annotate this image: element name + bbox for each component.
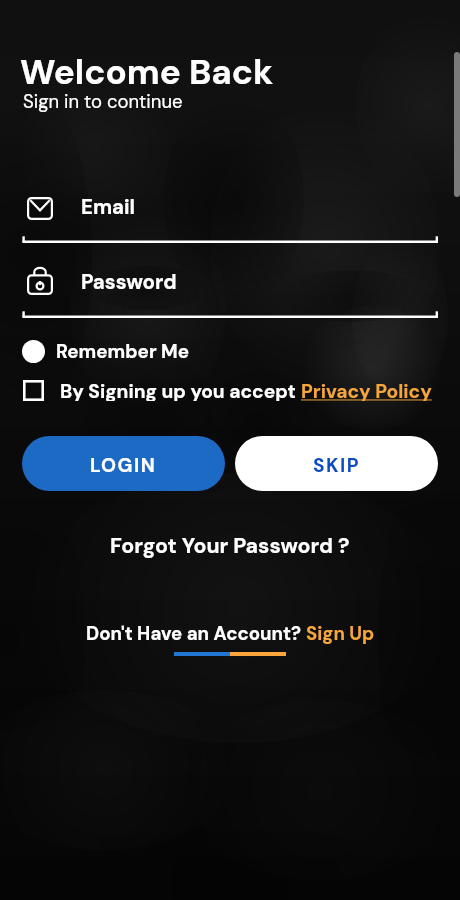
other: Email: [27, 197, 53, 220]
staticText: Password: [81, 269, 177, 296]
button[interactable]: Email: [0, 185, 460, 245]
button[interactable]: Forgot Your Password ?: [110, 532, 350, 560]
staticText: Remember Me: [56, 339, 190, 363]
staticText: By Signing up you accept: [60, 379, 301, 401]
staticText: Welcome Back: [20, 49, 274, 95]
button[interactable]: Privacy Policy: [301, 379, 432, 401]
staticText: Don't Have an Account?: [86, 622, 306, 646]
button[interactable]: Remember Me: [22, 339, 190, 363]
other: Password: [27, 266, 53, 295]
staticText: LOGIN: [90, 453, 157, 478]
button[interactable]: LOGIN: [22, 436, 225, 491]
button[interactable]: By Signing up you accept: [23, 379, 432, 401]
button[interactable]: SKIP: [235, 436, 438, 491]
staticText: SKIP: [313, 453, 361, 478]
staticText: Email: [81, 194, 136, 221]
staticText: Sign in to continue: [23, 90, 183, 114]
button[interactable]: Sign Up: [306, 622, 375, 646]
button[interactable]: Password: [0, 260, 460, 320]
